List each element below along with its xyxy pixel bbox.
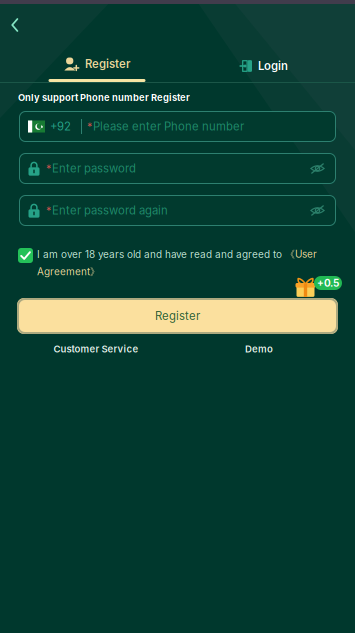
- staticText: Login: [258, 59, 288, 73]
- button[interactable]: I am over 18 and agree to the User Agree…: [18, 248, 33, 263]
- button[interactable]: Register: [17, 298, 338, 334]
- staticText: *: [46, 162, 51, 175]
- button[interactable]: Login: [184, 59, 346, 73]
- staticText: Only support Phone number Register: [18, 92, 190, 103]
- button[interactable]: Back: [0, 11, 30, 39]
- staticText: Register: [85, 57, 130, 71]
- button[interactable]: Demo: [229, 341, 289, 357]
- button[interactable]: Show password: [310, 162, 336, 174]
- staticText: +0.5: [317, 277, 339, 289]
- staticText: Customer Service: [53, 343, 138, 355]
- staticText: 《User: [285, 248, 317, 261]
- staticText: I am over 18 years old and have read and…: [37, 248, 285, 260]
- button[interactable]: Show password: [310, 204, 336, 216]
- staticText: Enter password again: [52, 204, 168, 217]
- staticText: Enter password: [52, 162, 136, 175]
- staticText: +92: [50, 120, 71, 133]
- button[interactable]: Register: [16, 57, 178, 82]
- staticText: *: [46, 204, 51, 217]
- button[interactable]: Customer Service: [41, 341, 151, 357]
- staticText: Agreement》: [37, 266, 100, 278]
- staticText: *: [87, 120, 92, 133]
- staticText: Demo: [245, 343, 273, 355]
- staticText: Register: [155, 309, 200, 323]
- staticText: Please enter Phone number: [93, 120, 244, 133]
